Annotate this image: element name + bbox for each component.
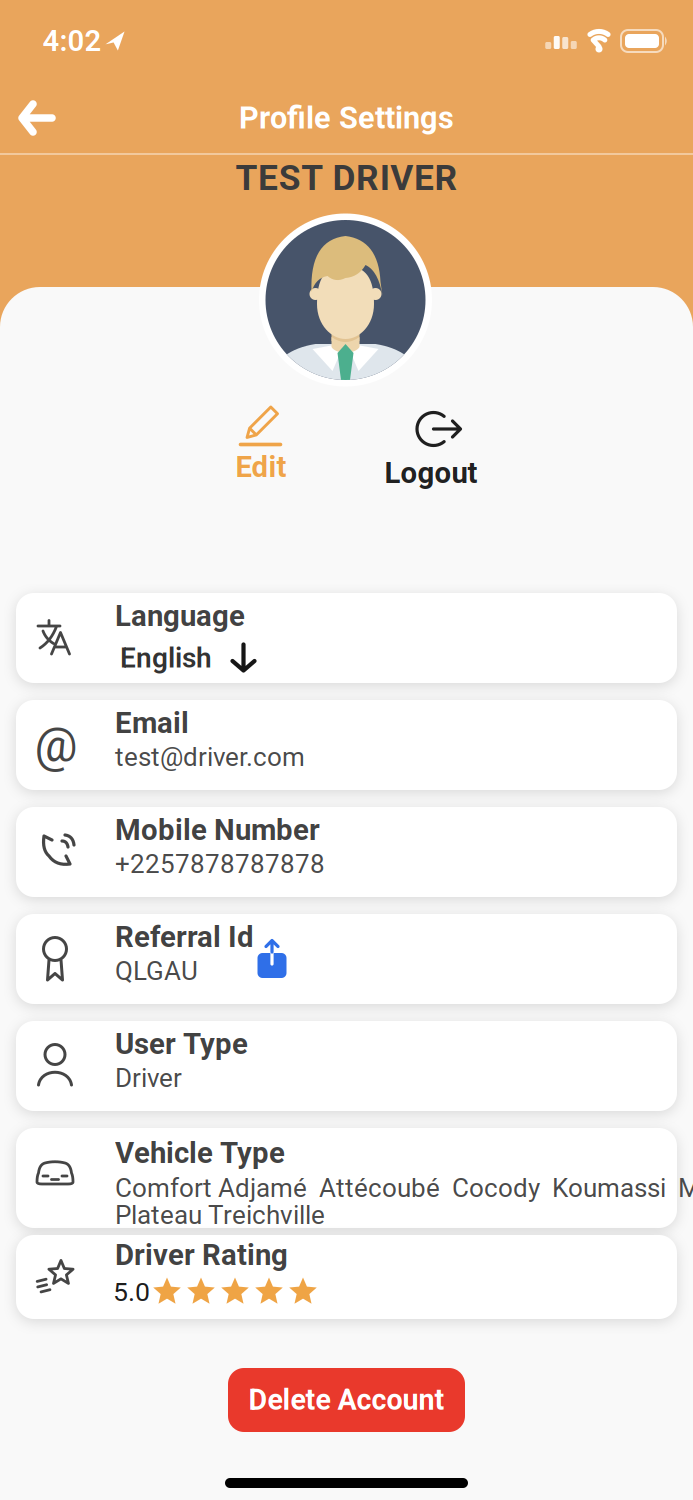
- staticText: 5.0: [113, 1276, 150, 1308]
- staticText: User Type: [115, 1027, 248, 1061]
- button[interactable]: Logout: [388, 396, 484, 496]
- staticText: QLGAU: [115, 956, 198, 986]
- staticText: Profile Settings: [239, 100, 454, 136]
- button[interactable]: Back: [20, 102, 54, 134]
- staticText: Edit: [235, 450, 286, 484]
- staticText: +2257878787878: [115, 849, 325, 879]
- staticText: Mobile Number: [115, 813, 320, 847]
- staticText: Logout: [384, 456, 477, 490]
- staticText: Driver: [115, 1063, 182, 1093]
- staticText: Comfort Adjamé Attécoubé Cocody Koumassi…: [115, 1173, 693, 1203]
- staticText: TEST DRIVER: [235, 157, 457, 199]
- staticText: @: [34, 717, 77, 773]
- button[interactable]: Language: [16, 593, 677, 683]
- staticText: Driver Rating: [115, 1238, 288, 1272]
- button[interactable]: Delete Account: [228, 1368, 465, 1432]
- staticText: Referral Id: [115, 920, 254, 954]
- staticText: Delete Account: [248, 1383, 444, 1417]
- staticText: Plateau Treichville: [115, 1200, 325, 1230]
- staticText: Language: [115, 599, 245, 633]
- staticText: Vehicle Type: [115, 1136, 285, 1170]
- staticText: test@driver.com: [115, 742, 305, 772]
- staticText: 4:02: [42, 24, 101, 58]
- staticText: Email: [115, 706, 189, 740]
- button[interactable]: Edit: [216, 395, 304, 495]
- button[interactable]: Share referral id: [257, 938, 287, 978]
- staticText: English: [120, 642, 212, 674]
